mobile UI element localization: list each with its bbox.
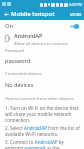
button[interactable]: On [0, 20, 84, 32]
button[interactable]: Back [2, 10, 10, 18]
button[interactable]: Password [0, 45, 84, 68]
staticText: Mobile hotspot [11, 10, 55, 18]
staticText: 4:33 PM [69, 2, 82, 7]
staticText: Connected devices [5, 71, 42, 77]
button[interactable]: AndroidAP [0, 32, 84, 45]
staticText: On [5, 22, 14, 30]
staticText: 1. Turn on Wi-Fi on the device that will… [5, 105, 80, 123]
staticText: 3. Connect to AndroidAP by entering pass… [5, 139, 80, 149]
staticText: How to connect from other devices [5, 96, 74, 102]
staticText: MORE [70, 12, 82, 17]
staticText: No devices [5, 81, 34, 89]
button[interactable]: MORE [68, 10, 84, 19]
staticText: AndroidAP [14, 32, 43, 40]
staticText: Password [5, 48, 24, 54]
staticText: Allow all devices to connect [14, 41, 68, 45]
staticText: 2. Select AndroidAP from the list of ava… [5, 125, 80, 137]
staticText: password [5, 57, 31, 65]
